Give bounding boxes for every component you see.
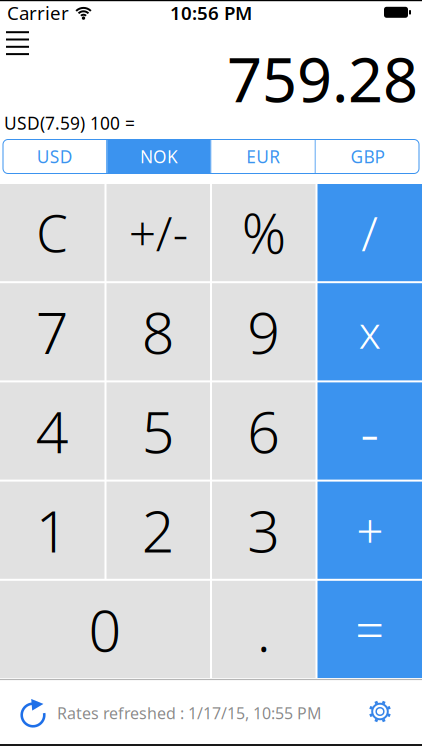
button[interactable]: NOK xyxy=(107,139,210,173)
button[interactable]: = xyxy=(317,581,422,678)
button[interactable]: 5 xyxy=(106,382,210,480)
button[interactable]: C xyxy=(0,184,104,281)
staticText: 759.28 xyxy=(227,38,418,119)
staticText: 0 xyxy=(88,591,121,667)
button[interactable]: 7 xyxy=(0,283,104,380)
button[interactable]: Refresh rates xyxy=(18,698,48,728)
staticText: . xyxy=(257,591,271,667)
staticText: C xyxy=(36,199,68,266)
staticText: 10:56 PM xyxy=(170,0,252,25)
staticText: % xyxy=(242,196,286,269)
staticText: - xyxy=(360,392,379,470)
staticText: 1 xyxy=(36,492,69,568)
button[interactable]: 3 xyxy=(212,482,315,579)
button[interactable]: 0 xyxy=(0,581,210,678)
button[interactable]: Settings xyxy=(367,698,393,724)
button[interactable]: 9 xyxy=(212,283,315,380)
button[interactable]: % xyxy=(212,184,315,281)
button[interactable]: x xyxy=(317,283,422,380)
staticText: 4 xyxy=(36,393,69,469)
staticText: 2 xyxy=(142,492,175,568)
staticText: 5 xyxy=(142,393,175,469)
staticText: 6 xyxy=(247,393,280,469)
staticText: Rates refreshed : 1/17/15, 10:55 PM xyxy=(57,702,322,724)
staticText: +/- xyxy=(129,201,188,264)
button[interactable]: 8 xyxy=(106,283,210,380)
button[interactable]: USD xyxy=(3,139,106,173)
button[interactable]: + xyxy=(317,482,422,579)
staticText: 3 xyxy=(247,492,280,568)
button[interactable]: +/- xyxy=(106,184,210,281)
staticText: / xyxy=(361,201,378,264)
staticText: NOK xyxy=(140,145,178,168)
staticText: 7 xyxy=(36,294,69,370)
staticText: EUR xyxy=(246,145,280,168)
button[interactable]: EUR xyxy=(211,139,315,173)
staticText: USD(7.59) 100 = xyxy=(4,111,135,134)
button[interactable]: GBP xyxy=(316,139,419,173)
staticText: 8 xyxy=(142,294,175,370)
staticText: + xyxy=(356,498,383,562)
button[interactable]: 6 xyxy=(212,382,315,480)
button[interactable]: 4 xyxy=(0,382,104,480)
button[interactable]: Menu xyxy=(6,31,29,56)
button[interactable]: - xyxy=(317,382,422,480)
staticText: USD xyxy=(37,145,73,168)
button[interactable]: 1 xyxy=(0,482,104,579)
staticText: = xyxy=(355,596,384,663)
staticText: 9 xyxy=(247,294,280,370)
button[interactable]: 2 xyxy=(106,482,210,579)
button[interactable]: / xyxy=(317,184,422,281)
staticText: x xyxy=(359,303,381,361)
button[interactable]: . xyxy=(212,581,315,678)
staticText: GBP xyxy=(350,145,384,168)
staticText: Carrier xyxy=(7,0,69,25)
